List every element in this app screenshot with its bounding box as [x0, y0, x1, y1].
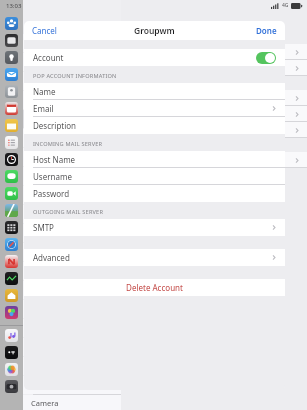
staticText: Camera	[31, 398, 59, 408]
staticText: Groupwm	[134, 25, 175, 37]
button[interactable]: Name	[24, 83, 285, 100]
button[interactable]: App	[5, 170, 18, 183]
button[interactable]: App	[5, 346, 18, 359]
staticText: Host Name	[33, 154, 76, 165]
button[interactable]: Description	[24, 117, 285, 134]
staticText: Username	[33, 171, 72, 182]
button[interactable]: App	[5, 85, 18, 98]
button[interactable]: App	[5, 289, 18, 302]
staticText: Name	[33, 86, 56, 97]
button[interactable]: App	[5, 34, 18, 47]
button[interactable]: Done	[248, 22, 285, 39]
button[interactable]: Account	[24, 49, 285, 66]
button[interactable]: App	[5, 102, 18, 115]
staticText: INCOMING MAIL SERVER	[33, 140, 103, 148]
button[interactable]: App	[5, 119, 18, 132]
button[interactable]: Email	[24, 100, 285, 117]
staticText: SMTP	[33, 222, 54, 233]
button[interactable]: App	[5, 380, 18, 393]
button[interactable]: Username	[24, 168, 285, 185]
button[interactable]: App	[5, 136, 18, 149]
staticText: Email	[33, 103, 54, 114]
button[interactable]: App	[5, 306, 18, 319]
staticText: OUTGOING MAIL SERVER	[33, 208, 104, 216]
staticText: Password	[33, 188, 70, 199]
button[interactable]: Advanced	[24, 249, 285, 266]
staticText: POP ACCOUNT INFORMATION	[33, 72, 117, 80]
button[interactable]: App	[5, 153, 18, 166]
button[interactable]: Account enabled	[256, 52, 276, 64]
button[interactable]: App	[5, 255, 18, 268]
button[interactable]: App	[5, 204, 18, 217]
staticText: Delete Account	[126, 282, 183, 293]
button[interactable]: Cancel	[24, 22, 65, 39]
button[interactable]: Password	[24, 185, 285, 202]
staticText: Description	[33, 120, 77, 131]
staticText: Done	[256, 25, 277, 36]
button[interactable]: App	[5, 187, 18, 200]
button[interactable]: App	[5, 363, 18, 376]
button[interactable]: App	[5, 51, 18, 64]
staticText: Cancel	[32, 25, 57, 36]
button[interactable]: App	[5, 238, 18, 251]
button[interactable]: Delete Account	[24, 279, 285, 296]
staticText: 13:03	[6, 2, 22, 10]
button[interactable]: App	[5, 221, 18, 234]
staticText: Settings	[56, 20, 88, 31]
button[interactable]: App	[5, 68, 18, 81]
button[interactable]: SMTP	[24, 219, 285, 236]
button[interactable]: Host Name	[24, 151, 285, 168]
button[interactable]: App	[5, 17, 18, 30]
staticText: Advanced	[33, 252, 70, 263]
staticText: Account	[33, 52, 64, 63]
staticText: 4G	[282, 2, 289, 9]
staticText: Passwords & Accounts	[170, 20, 258, 31]
button[interactable]: App	[5, 329, 18, 342]
button[interactable]: App	[5, 272, 18, 285]
